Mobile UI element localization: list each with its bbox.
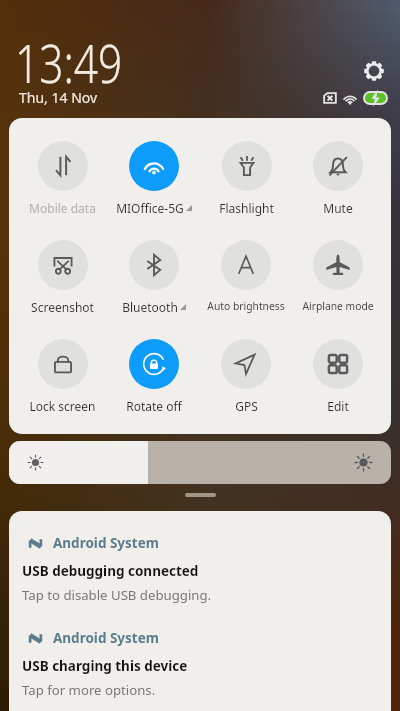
button[interactable]: Android System <box>9 629 391 699</box>
staticText: GPS <box>235 398 258 414</box>
staticText: Edit <box>327 398 349 414</box>
staticText: Rotate off <box>126 398 182 414</box>
button[interactable]: Lock screen <box>29 339 96 414</box>
staticText: Bluetooth <box>122 299 178 315</box>
staticText: USB charging this device <box>22 657 188 675</box>
staticText: Android System <box>53 629 159 647</box>
button[interactable]: Android System <box>9 534 391 604</box>
button[interactable]: Flashlight <box>219 141 274 216</box>
staticText: Mute <box>323 200 353 216</box>
staticText: MIOffice-5G <box>116 200 184 216</box>
staticText: Android System <box>53 534 159 552</box>
staticText: Tap to disable USB debugging. <box>22 586 212 604</box>
staticText: Flashlight <box>219 200 274 216</box>
button[interactable]: Brightness <box>9 441 391 484</box>
staticText: Tap for more options. <box>22 681 156 699</box>
button[interactable]: Bluetooth <box>122 240 186 315</box>
staticText: 13:49 <box>15 26 122 98</box>
button[interactable]: Settings <box>364 61 384 81</box>
button[interactable]: Mute <box>313 141 363 216</box>
button[interactable]: Edit <box>313 339 363 414</box>
staticText: Thu, 14 Nov <box>19 88 98 107</box>
staticText: Lock screen <box>29 398 96 414</box>
staticText: Mobile data <box>29 200 96 216</box>
button[interactable]: Rotate off <box>126 339 182 414</box>
button[interactable]: GPS <box>221 339 271 414</box>
staticText: Auto brightness <box>207 299 285 313</box>
button[interactable]: Screenshot <box>31 240 94 315</box>
staticText: Airplane mode <box>302 299 374 313</box>
staticText: Screenshot <box>31 299 94 315</box>
button[interactable]: Auto brightness <box>207 240 285 313</box>
button[interactable]: MIOffice-5G <box>116 141 192 216</box>
button[interactable]: Mobile data <box>29 141 96 216</box>
button[interactable]: Airplane mode <box>302 240 374 313</box>
staticText: USB debugging connected <box>22 562 199 580</box>
